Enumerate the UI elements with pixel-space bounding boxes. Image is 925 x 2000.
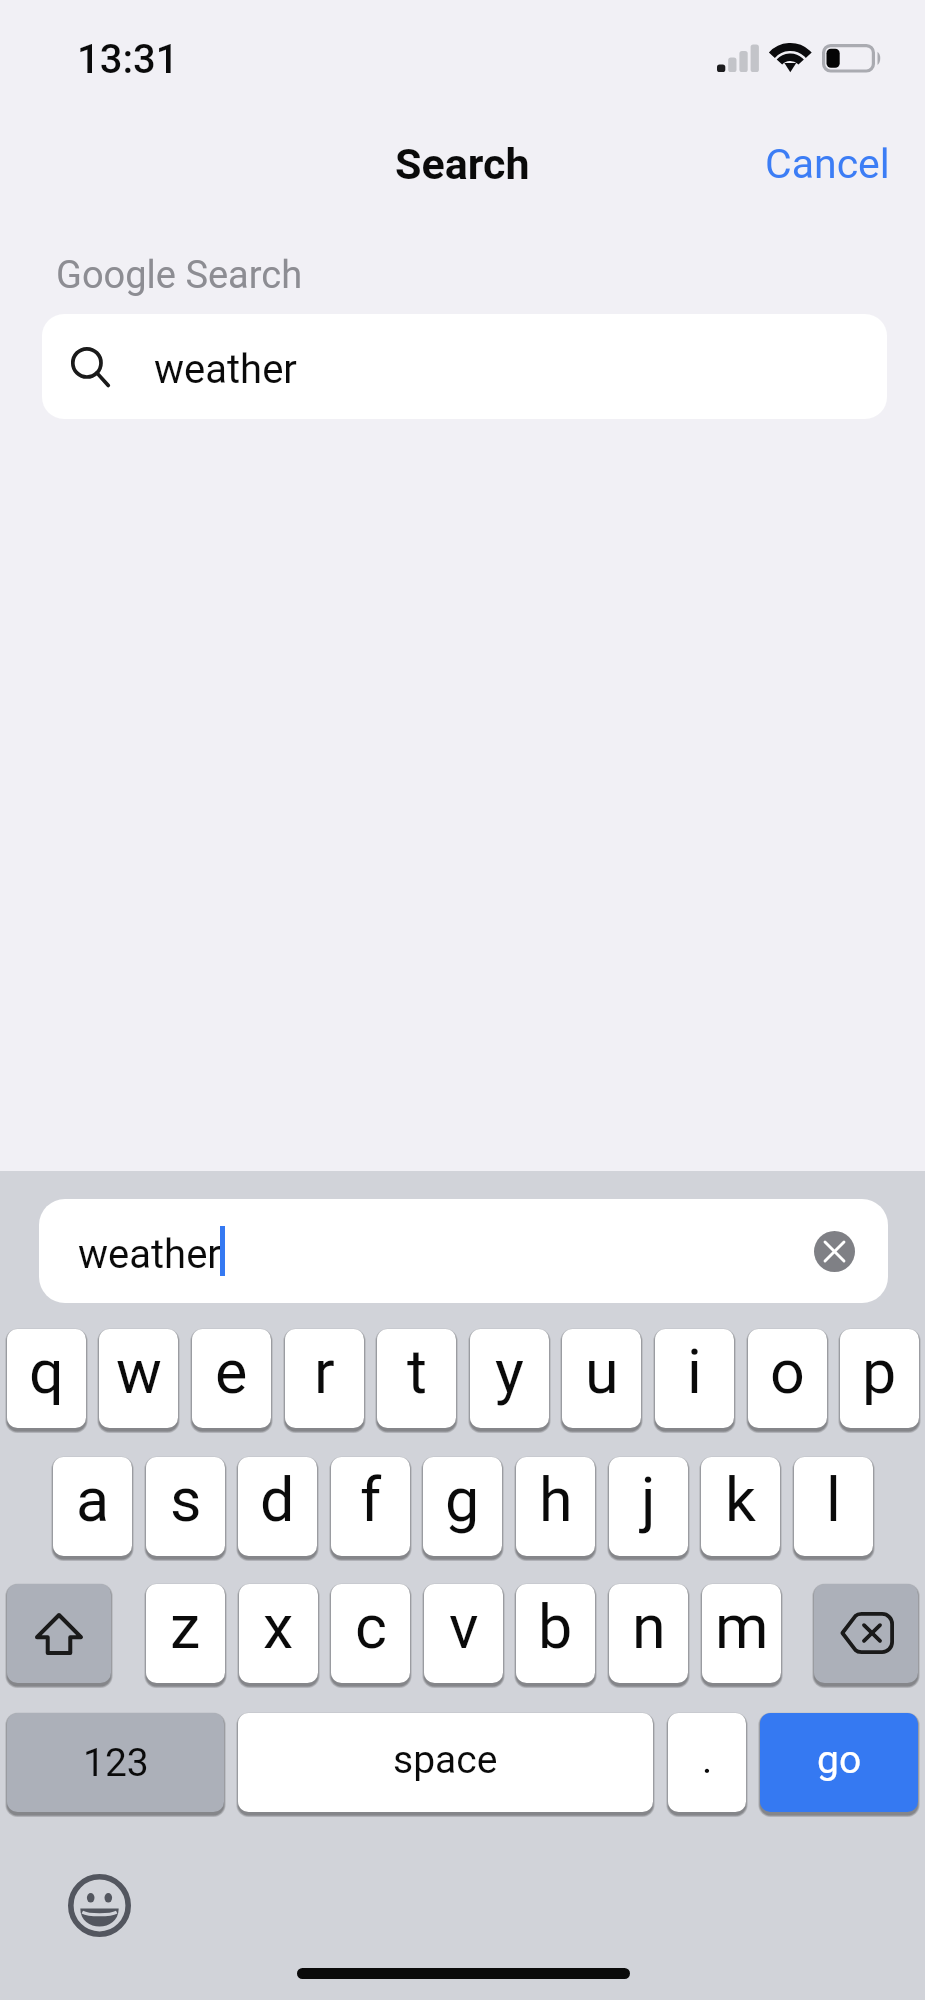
button[interactable]: weather xyxy=(42,314,887,419)
button[interactable]: h xyxy=(516,1457,595,1556)
staticText: 13:31 xyxy=(77,36,179,83)
staticText: Cancel xyxy=(765,140,890,188)
button[interactable]: o xyxy=(748,1329,827,1428)
button[interactable]: s xyxy=(146,1457,225,1556)
button[interactable]: go xyxy=(760,1713,918,1812)
staticText: t xyxy=(407,1336,427,1407)
button[interactable]: p xyxy=(840,1329,919,1428)
button[interactable]: b xyxy=(516,1584,595,1683)
staticText: c xyxy=(355,1591,387,1662)
staticText: f xyxy=(360,1464,382,1535)
staticText: n xyxy=(632,1591,666,1662)
staticText: m xyxy=(715,1591,769,1662)
button[interactable]: t xyxy=(377,1329,456,1428)
button[interactable]: i xyxy=(655,1329,734,1428)
button[interactable]: Shift xyxy=(7,1584,111,1683)
staticText: r xyxy=(314,1336,335,1407)
staticText: . xyxy=(702,1737,713,1783)
staticText: 123 xyxy=(83,1740,149,1786)
button[interactable]: v xyxy=(424,1584,503,1683)
button[interactable]: c xyxy=(331,1584,410,1683)
button[interactable]: g xyxy=(423,1457,502,1556)
staticText: g xyxy=(445,1464,480,1535)
staticText: y xyxy=(495,1336,524,1407)
button[interactable]: w xyxy=(99,1329,178,1428)
button[interactable]: j xyxy=(609,1457,688,1556)
staticText: q xyxy=(29,1336,64,1407)
staticText: x xyxy=(263,1591,294,1662)
staticText: weather xyxy=(78,1231,221,1278)
button[interactable]: Backspace xyxy=(814,1584,918,1683)
staticText: Google Search xyxy=(56,253,303,298)
staticText: i xyxy=(687,1336,702,1407)
button[interactable]: y xyxy=(470,1329,549,1428)
button[interactable]: e xyxy=(192,1329,271,1428)
button[interactable]: Emoji keyboard xyxy=(68,1874,131,1937)
staticText: go xyxy=(817,1737,862,1783)
button[interactable]: z xyxy=(146,1584,225,1683)
staticText: space xyxy=(393,1737,498,1783)
staticText: l xyxy=(826,1464,841,1535)
staticText: a xyxy=(76,1464,110,1535)
staticText: u xyxy=(585,1336,619,1407)
button[interactable]: u xyxy=(562,1329,641,1428)
staticText: p xyxy=(862,1336,897,1407)
button[interactable]: q xyxy=(7,1329,86,1428)
button[interactable]: f xyxy=(331,1457,410,1556)
staticText: weather xyxy=(154,346,297,393)
button[interactable]: weather xyxy=(39,1199,888,1303)
staticText: s xyxy=(170,1464,202,1535)
button[interactable]: d xyxy=(238,1457,317,1556)
staticText: b xyxy=(538,1591,573,1662)
button[interactable]: a xyxy=(53,1457,132,1556)
staticText: k xyxy=(725,1464,756,1535)
staticText: Search xyxy=(395,139,530,189)
staticText: e xyxy=(215,1336,248,1407)
button[interactable]: l xyxy=(794,1457,873,1556)
staticText: v xyxy=(449,1591,479,1662)
button[interactable]: n xyxy=(609,1584,688,1683)
button[interactable]: x xyxy=(239,1584,318,1683)
staticText: w xyxy=(116,1336,162,1407)
button[interactable]: space xyxy=(238,1713,653,1812)
button[interactable]: r xyxy=(285,1329,364,1428)
staticText: z xyxy=(170,1591,201,1662)
staticText: d xyxy=(260,1464,295,1535)
button[interactable]: Cancel xyxy=(735,130,925,198)
staticText: o xyxy=(770,1336,805,1407)
button[interactable]: Clear text xyxy=(814,1231,855,1272)
button[interactable]: . xyxy=(668,1713,746,1812)
button[interactable]: m xyxy=(702,1584,781,1683)
button[interactable]: 123 xyxy=(7,1713,224,1812)
staticText: h xyxy=(539,1464,573,1535)
staticText: j xyxy=(641,1464,656,1535)
button[interactable]: k xyxy=(701,1457,780,1556)
